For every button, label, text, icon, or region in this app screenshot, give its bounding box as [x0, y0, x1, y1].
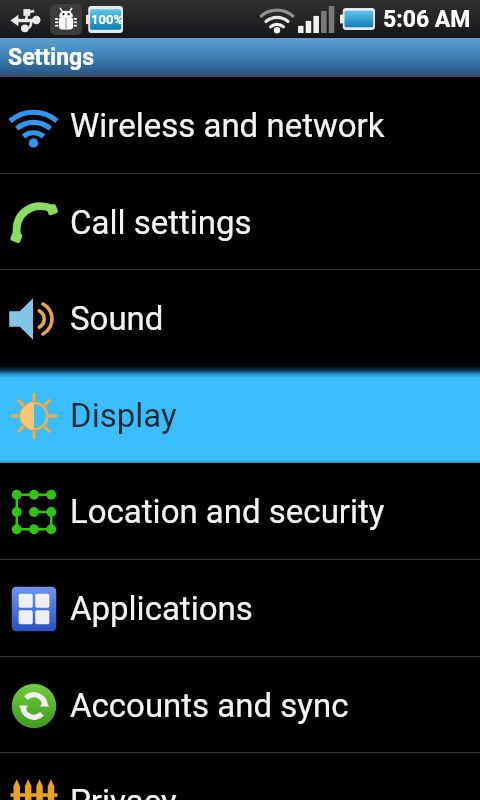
staticText: Wireless and network [70, 106, 385, 145]
other: Mobile signal strength [298, 6, 336, 33]
button[interactable]: Display [0, 367, 480, 464]
staticText: Sound [70, 299, 164, 338]
staticText: Location and security [70, 492, 385, 531]
other: USB debugging enabled [50, 4, 82, 35]
staticText: 100% [91, 12, 123, 27]
button[interactable]: Applications [0, 560, 480, 657]
staticText: Privacy [70, 782, 177, 800]
other: Wi-Fi signal [260, 5, 294, 33]
staticText: Accounts and sync [70, 686, 349, 725]
other: USB connected [9, 7, 45, 33]
staticText: Applications [70, 589, 253, 628]
button[interactable]: Accounts and sync [0, 657, 480, 754]
button[interactable]: Wireless and network [0, 77, 480, 174]
staticText: Settings [8, 44, 95, 71]
button[interactable]: Privacy [0, 753, 480, 800]
other: Battery full [340, 6, 375, 32]
staticText: Call settings [70, 203, 252, 242]
button[interactable]: Sound [0, 270, 480, 367]
button[interactable]: Location and security [0, 463, 480, 560]
staticText: Display [70, 396, 177, 435]
button[interactable]: Call settings [0, 174, 480, 271]
staticText: 5:06 AM [383, 6, 471, 33]
